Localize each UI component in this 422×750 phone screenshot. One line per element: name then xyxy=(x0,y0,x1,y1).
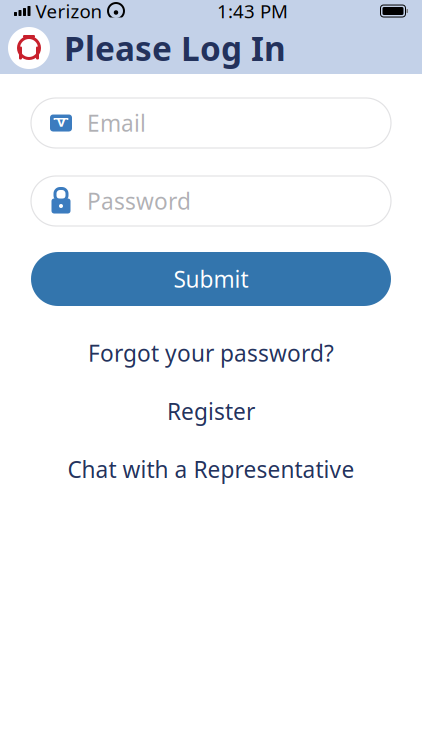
staticText: Forgot your password? xyxy=(88,338,334,368)
staticText: 1:43 PM xyxy=(217,0,288,23)
button[interactable]: Password xyxy=(31,176,391,226)
button[interactable]: v xyxy=(31,98,391,148)
staticText: Password xyxy=(87,186,191,216)
staticText: Chat with a Representative xyxy=(67,454,354,484)
button[interactable]: Forgot your password? xyxy=(31,328,391,378)
button[interactable]: Submit xyxy=(31,252,391,306)
button[interactable]: Register xyxy=(31,386,391,436)
button[interactable]: Chat with a Representative xyxy=(31,444,391,494)
staticText: Register xyxy=(167,396,255,426)
staticText: Email xyxy=(87,108,146,138)
staticText: Submit xyxy=(173,264,248,294)
staticText: Verizon xyxy=(35,0,102,23)
staticText: v xyxy=(57,111,65,131)
staticText: Please Log In xyxy=(64,26,286,70)
